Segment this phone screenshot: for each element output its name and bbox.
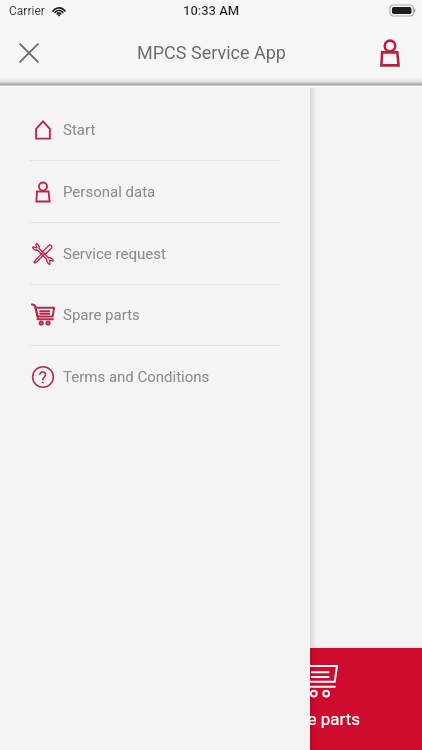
button[interactable]: Service request [0, 223, 310, 284]
staticText: 10:33 AM [183, 3, 240, 18]
staticText: MPCS Service App [137, 42, 286, 63]
button[interactable]: Profile [367, 30, 413, 76]
staticText: Spare parts [63, 306, 140, 324]
staticText: Terms and Conditions [63, 368, 210, 386]
staticText: Start [63, 121, 96, 139]
staticText: Service request [63, 245, 166, 263]
button[interactable]: Start [0, 99, 310, 160]
staticText: Spare parts [273, 709, 361, 729]
staticText: Personal data [63, 183, 156, 201]
button[interactable]: Personal data [0, 161, 310, 222]
button[interactable]: Close [6, 30, 52, 76]
button[interactable]: Spare parts [0, 285, 310, 345]
button[interactable]: Spare parts [211, 648, 422, 750]
staticText: Carrier [9, 4, 45, 18]
button[interactable]: Terms and Conditions [0, 346, 310, 407]
